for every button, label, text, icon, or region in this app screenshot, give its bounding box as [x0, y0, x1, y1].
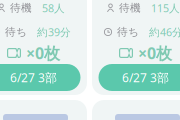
button[interactable]: 6/27 3部 — [98, 64, 180, 91]
staticText: ×0枚 — [138, 42, 172, 64]
staticText: 待機 — [10, 1, 32, 14]
staticText: 約46分 — [149, 25, 180, 39]
staticText: 58人 — [42, 1, 65, 15]
staticText: 115人 — [151, 1, 180, 15]
staticText: 6/27 3部 — [10, 69, 57, 85]
staticText: 約39分 — [37, 25, 71, 39]
staticText: 待ち — [5, 25, 27, 38]
staticText: 待機 — [119, 1, 141, 14]
button[interactable]: 6/27 3部 — [0, 64, 80, 91]
staticText: 6/27 3部 — [122, 69, 169, 85]
staticText: ×0枚 — [26, 42, 60, 64]
staticText: 待ち — [117, 25, 139, 38]
